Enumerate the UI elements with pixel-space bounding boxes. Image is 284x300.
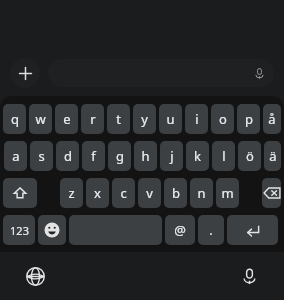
staticText: n (197, 184, 206, 202)
button[interactable]: i (185, 104, 208, 134)
button[interactable]: q (3, 104, 26, 134)
button[interactable]: w (29, 104, 52, 134)
staticText: r (90, 110, 96, 128)
button[interactable]: 123 (3, 215, 35, 245)
button[interactable]: f (82, 141, 105, 171)
button[interactable]: ä (264, 141, 281, 171)
staticText: w (35, 110, 46, 128)
button[interactable]: h (134, 141, 157, 171)
button[interactable]: Change language (20, 261, 50, 291)
staticText: l (222, 147, 226, 165)
button[interactable]: b (164, 178, 187, 208)
button[interactable]: å (263, 104, 281, 134)
button[interactable]: m (216, 178, 239, 208)
button[interactable]: c (112, 178, 135, 208)
button[interactable]: t (107, 104, 130, 134)
staticText: j (170, 147, 174, 165)
button[interactable]: r (81, 104, 104, 134)
button[interactable]: a (4, 141, 27, 171)
button[interactable]: Space (69, 215, 162, 245)
staticText: p (245, 110, 253, 128)
staticText: t (116, 110, 121, 128)
button[interactable]: Shift (3, 178, 37, 208)
button[interactable]: s (30, 141, 53, 171)
staticText: e (63, 110, 71, 128)
button[interactable]: z (60, 178, 83, 208)
staticText: q (11, 110, 19, 128)
button[interactable]: j (160, 141, 183, 171)
staticText: d (64, 147, 72, 165)
staticText: v (146, 184, 153, 202)
staticText: a (12, 147, 20, 165)
staticText: @ (174, 221, 186, 239)
button[interactable]: u (159, 104, 182, 134)
staticText: f (91, 147, 96, 165)
button[interactable]: v (138, 178, 161, 208)
staticText: m (221, 184, 234, 202)
button[interactable]: Voice input (234, 261, 264, 291)
button[interactable]: p (237, 104, 260, 134)
button[interactable]: k (186, 141, 209, 171)
button[interactable]: n (190, 178, 213, 208)
staticText: ö (246, 147, 254, 165)
button[interactable]: e (55, 104, 78, 134)
button[interactable]: . (198, 215, 224, 245)
staticText: z (68, 184, 75, 202)
button[interactable] (48, 59, 274, 87)
staticText: c (120, 184, 127, 202)
button[interactable]: x (86, 178, 109, 208)
button[interactable]: Emoji (38, 215, 66, 245)
staticText: i (195, 110, 199, 128)
staticText: k (194, 147, 201, 165)
button[interactable]: g (108, 141, 131, 171)
staticText: h (141, 147, 150, 165)
button[interactable]: Backspace (262, 178, 281, 208)
button[interactable]: ö (238, 141, 261, 171)
staticText: y (141, 110, 148, 128)
staticText: u (166, 110, 175, 128)
staticText: 123 (10, 223, 29, 238)
staticText: s (38, 147, 45, 165)
staticText: g (116, 147, 124, 165)
button[interactable]: l (212, 141, 235, 171)
staticText: å (268, 110, 276, 128)
staticText: o (219, 110, 227, 128)
staticText: x (94, 184, 101, 202)
staticText: b (172, 184, 180, 202)
staticText: ä (269, 147, 277, 165)
button[interactable]: @ (165, 215, 195, 245)
button[interactable]: Enter (227, 215, 278, 245)
button[interactable]: Add (10, 58, 40, 88)
button[interactable]: o (211, 104, 234, 134)
button[interactable]: y (133, 104, 156, 134)
button[interactable]: d (56, 141, 79, 171)
staticText: . (209, 221, 213, 239)
